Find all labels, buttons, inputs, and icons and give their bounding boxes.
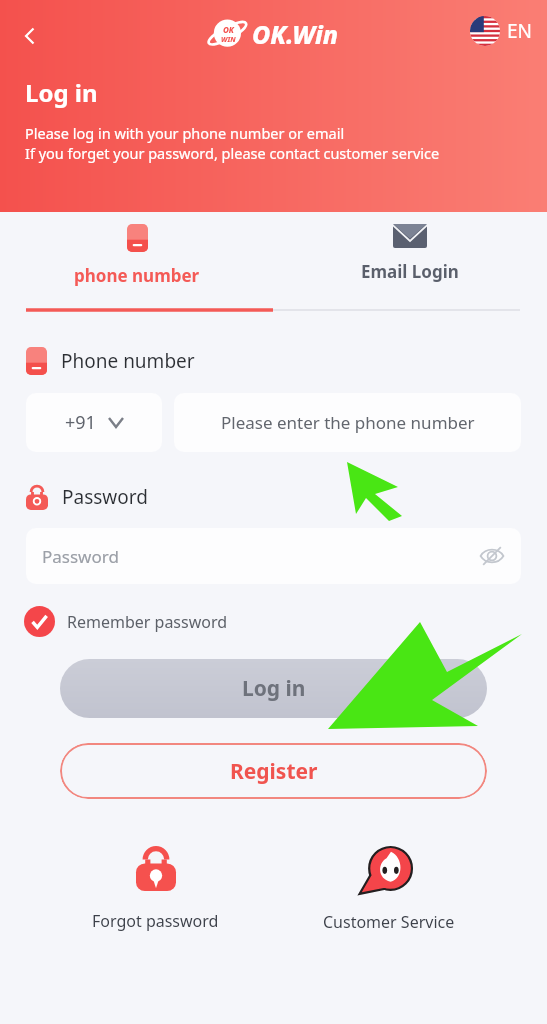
staticText: OK: [223, 24, 234, 35]
button[interactable]: Back: [8, 14, 52, 58]
button[interactable]: OK: [209, 14, 339, 54]
button[interactable]: Register: [60, 743, 487, 799]
button[interactable]: phone number: [0, 212, 273, 317]
staticText: Phone number: [61, 348, 195, 374]
button[interactable]: Password: [26, 528, 521, 584]
staticText: Forgot password: [92, 910, 219, 932]
button[interactable]: Forgot password: [80, 841, 231, 936]
staticText: WIN: [221, 35, 236, 45]
staticText: Please enter the phone number: [221, 411, 475, 434]
staticText: EN: [507, 18, 533, 44]
staticText: Password: [62, 484, 148, 510]
staticText: Please log in with your phone number or …: [25, 123, 345, 143]
staticText: phone number: [74, 264, 200, 287]
staticText: +91: [65, 410, 96, 435]
button[interactable]: Show password: [477, 541, 507, 571]
staticText: Remember password: [67, 611, 228, 633]
button[interactable]: Log in: [60, 659, 487, 718]
staticText: Register: [230, 757, 318, 786]
staticText: Log in: [242, 674, 306, 703]
button[interactable]: +91: [26, 393, 162, 452]
button[interactable]: Please enter the phone number: [174, 393, 521, 452]
button[interactable]: Customer Service: [311, 841, 467, 937]
staticText: OK.Win: [252, 17, 339, 51]
button[interactable]: Language EN: [470, 16, 533, 46]
staticText: Log in: [25, 76, 98, 109]
staticText: If you forget your password, please cont…: [25, 143, 440, 163]
button[interactable]: Remember password: [24, 606, 228, 637]
staticText: Customer Service: [323, 911, 455, 933]
staticText: Email Login: [361, 260, 459, 283]
button[interactable]: Email Login: [273, 212, 547, 317]
staticText: Password: [42, 545, 119, 568]
